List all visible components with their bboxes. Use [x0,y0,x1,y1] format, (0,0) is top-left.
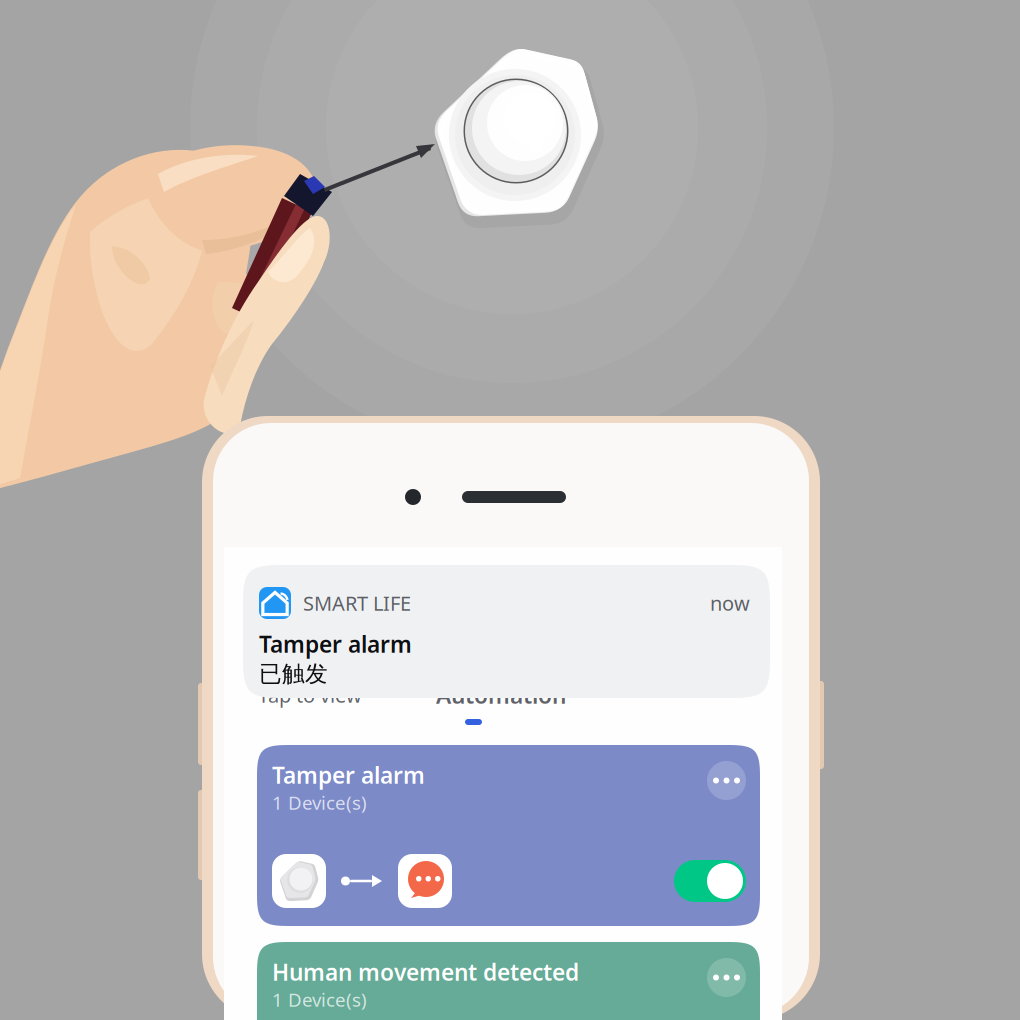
staticText: 已触发 [259,660,328,688]
staticText: Tap to view [258,682,362,708]
staticText: 1 Device(s) [272,987,367,1012]
staticText: Human movement detected [272,957,579,987]
staticText: Automation [436,680,566,710]
button[interactable]: More options [707,761,746,800]
staticText: Tamper alarm [259,629,412,659]
staticText: SMART LIFE [303,590,411,616]
staticText: 1 Device(s) [272,790,367,815]
button[interactable]: More options [707,958,746,997]
button[interactable]: Tamper alarm [257,745,760,926]
button[interactable]: Human movement detected [257,942,760,1020]
staticText: now [710,590,750,616]
button[interactable]: SMART LIFE [243,565,770,698]
button[interactable]: Automation enabled [674,860,746,902]
staticText: Tamper alarm [272,760,425,790]
